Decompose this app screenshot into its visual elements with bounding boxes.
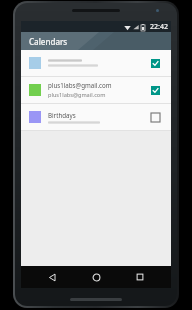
button[interactable]: Recent apps <box>127 266 153 288</box>
button[interactable]: plus1labs@gmail.com <box>21 77 171 103</box>
staticText: Birthdays <box>48 111 76 119</box>
button[interactable]: Calendar checked <box>21 50 171 76</box>
button[interactable]: Birthdays <box>21 104 171 130</box>
staticText: plus1labs@gmail.com <box>48 91 106 99</box>
button[interactable]: Home <box>83 266 109 288</box>
staticText: 22:42 <box>150 22 168 32</box>
staticText: plus1labs@gmail.com <box>48 81 112 89</box>
button[interactable]: Birthdays unchecked <box>147 109 163 125</box>
button[interactable]: Calendar checked <box>147 55 163 71</box>
button[interactable]: Calendars <box>21 32 171 50</box>
button[interactable]: Back <box>39 266 65 288</box>
staticText: Calendars <box>29 36 68 47</box>
button[interactable]: plus1labs@gmail.com checked <box>147 82 163 98</box>
